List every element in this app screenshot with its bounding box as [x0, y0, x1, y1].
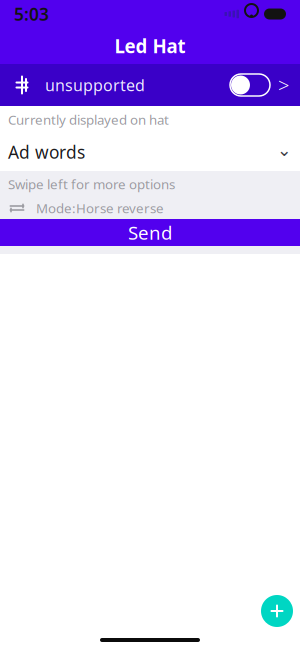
staticText: Mode:Horse reverse [36, 199, 164, 217]
staticText: unsupported [45, 74, 145, 96]
staticText: Swipe left for more options [8, 175, 175, 193]
button[interactable]: Ad words [0, 133, 300, 171]
staticText: Ad words [8, 140, 85, 163]
button[interactable]: Add [261, 595, 293, 627]
staticText: Led Hat [114, 34, 185, 58]
button[interactable]: Send [0, 219, 300, 246]
button[interactable]: Mode:Horse reverse [0, 197, 300, 219]
staticText: Send [128, 220, 172, 245]
button[interactable]: unsupported [0, 64, 300, 106]
staticText: ⌄ [277, 140, 292, 160]
staticText: 5:03 [14, 2, 49, 25]
staticText: Currently displayed on hat [8, 111, 169, 128]
staticText: > [278, 72, 289, 98]
